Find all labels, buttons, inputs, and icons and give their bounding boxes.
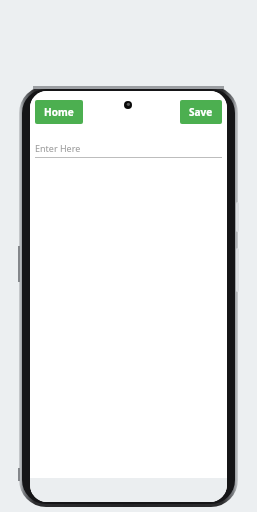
staticText: Home — [44, 105, 74, 119]
staticText: Enter Here — [35, 142, 81, 154]
staticText: Save — [189, 105, 213, 119]
button[interactable]: Enter Here — [35, 142, 222, 158]
button[interactable]: Home — [35, 100, 83, 124]
button[interactable]: Save — [180, 100, 222, 124]
